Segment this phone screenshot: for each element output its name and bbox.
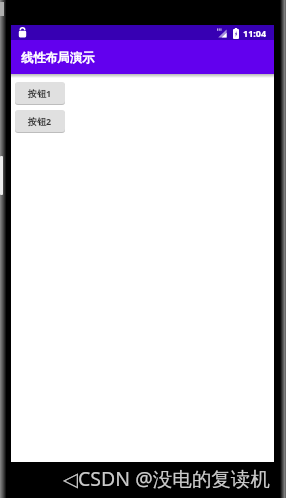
button[interactable]: 按钮2: [15, 110, 65, 132]
staticText: 按钮2: [28, 115, 52, 127]
staticText: 11:04: [243, 27, 267, 39]
staticText: 线性布局演示: [21, 50, 95, 65]
staticText: 按钮1: [28, 87, 52, 99]
staticText: ◁CSDN @没电的复读机: [63, 465, 270, 492]
button[interactable]: 按钮1: [15, 82, 65, 104]
